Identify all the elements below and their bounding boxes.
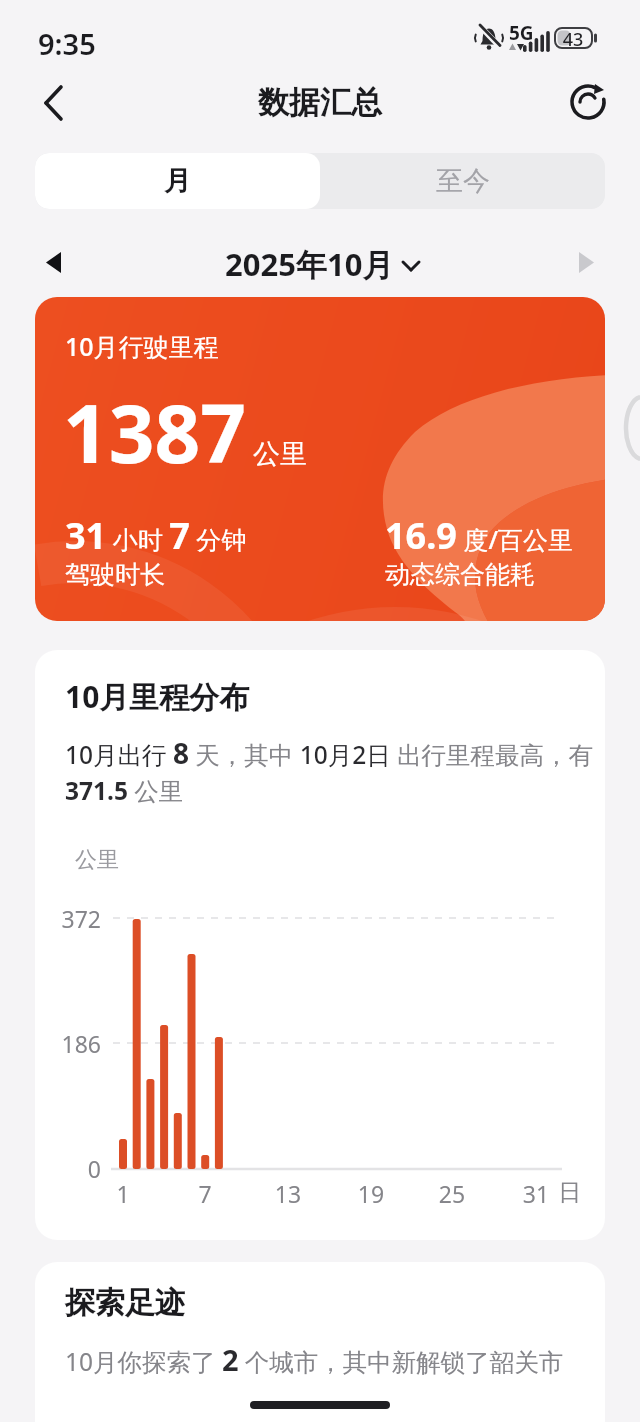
button[interactable]: 10月行驶里程: [35, 297, 605, 621]
staticText: 公里: [75, 846, 119, 874]
button[interactable]: [574, 250, 598, 276]
staticText: 43: [558, 27, 588, 52]
staticText: 驾驶时长: [65, 559, 165, 590]
staticText: 31 小时 7 分钟: [65, 511, 247, 560]
staticText: 探索足迹: [65, 1284, 185, 1322]
staticText: 2025年10月: [225, 243, 394, 285]
staticText: 10月里程分布: [65, 676, 250, 717]
staticText: 10月行驶里程: [65, 329, 219, 363]
staticText: 13: [268, 1178, 308, 1209]
staticText: 25: [432, 1178, 472, 1209]
staticText: 186: [57, 1028, 101, 1059]
staticText: 0: [57, 1153, 101, 1184]
staticText: 31: [516, 1178, 556, 1209]
button[interactable]: [42, 250, 66, 276]
staticText: 1387 公里: [63, 377, 308, 486]
button[interactable]: [36, 84, 74, 122]
button[interactable]: 至今: [320, 153, 605, 209]
staticText: 10月你探索了 2 个城市，其中新解锁了韶关市: [65, 1340, 564, 1379]
staticText: 至今: [436, 164, 490, 198]
button[interactable]: 2025年10月: [0, 243, 640, 285]
staticText: 19: [351, 1178, 391, 1209]
staticText: 日: [550, 1178, 590, 1207]
staticText: 动态综合能耗: [385, 559, 535, 590]
staticText: 9:35: [38, 24, 96, 63]
staticText: 372: [57, 903, 101, 934]
staticText: 7: [185, 1178, 225, 1209]
staticText: 5G: [509, 20, 534, 46]
staticText: 月: [164, 164, 191, 198]
button[interactable]: 月: [35, 153, 320, 209]
staticText: 371.5 公里: [65, 774, 184, 807]
staticText: 数据汇总: [258, 83, 382, 122]
staticText: 1: [103, 1178, 143, 1209]
staticText: 10月出行 8 天，其中 10月2日 出行里程最高，有: [65, 734, 594, 772]
staticText: 16.9 度/百公里: [385, 511, 574, 560]
button[interactable]: [568, 82, 608, 122]
